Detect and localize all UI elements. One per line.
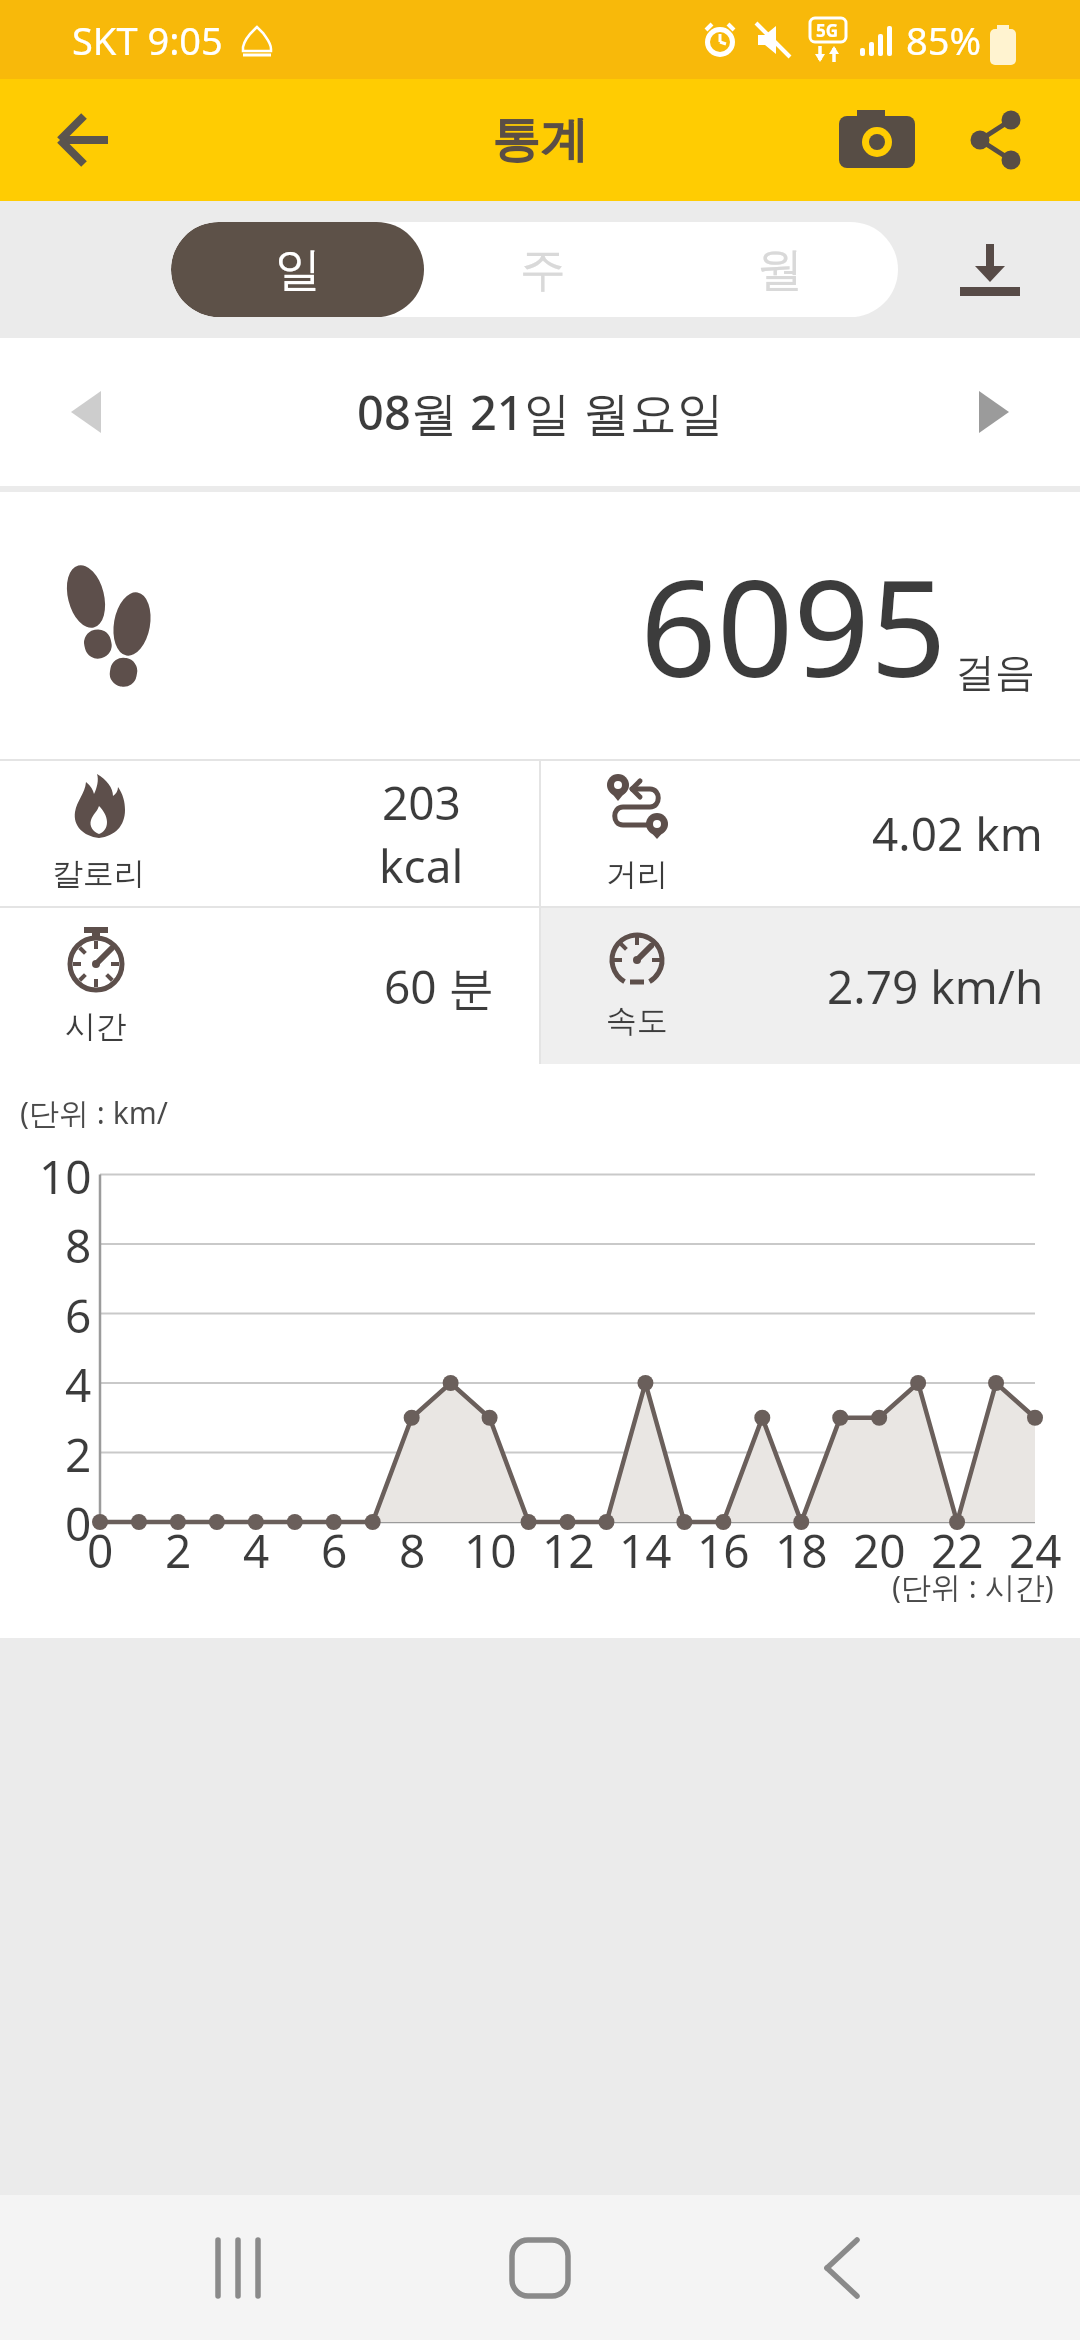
button[interactable]: [50, 376, 122, 448]
staticText: 0: [65, 1492, 92, 1555]
staticText: 속도: [606, 1001, 668, 1040]
staticText: 22: [931, 1519, 984, 1582]
staticText: 18: [775, 1519, 828, 1582]
staticText: 4.02 km: [872, 802, 1043, 865]
staticText: 2.79 km/h: [827, 955, 1044, 1018]
button[interactable]: 일: [171, 222, 424, 317]
staticText: 주: [520, 241, 566, 299]
button[interactable]: 월: [661, 222, 898, 317]
staticText: 203: [382, 771, 461, 834]
staticText: 16: [697, 1519, 750, 1582]
staticText: 6: [321, 1519, 348, 1582]
staticText: 4: [243, 1519, 270, 1582]
button[interactable]: [183, 2213, 293, 2323]
staticText: 걸음: [955, 647, 1035, 697]
staticText: 4: [65, 1353, 92, 1416]
button[interactable]: [958, 376, 1030, 448]
button[interactable]: 거리: [541, 761, 1080, 906]
staticText: 85%: [906, 14, 982, 66]
staticText: 6095: [640, 534, 947, 717]
button[interactable]: [837, 100, 917, 180]
staticText: 24: [1009, 1519, 1062, 1582]
staticText: 칼로리: [52, 854, 145, 893]
staticText: (단위 : 시간): [892, 1566, 1054, 1607]
staticText: 10: [464, 1519, 517, 1582]
staticText: 20: [853, 1519, 906, 1582]
staticText: 14: [619, 1519, 672, 1582]
staticText: 10: [39, 1145, 92, 1208]
staticText: kcal: [379, 834, 464, 897]
staticText: 거리: [606, 855, 668, 894]
button[interactable]: 칼로리: [0, 761, 539, 906]
staticText: 일: [275, 241, 321, 299]
staticText: 2: [65, 1423, 92, 1486]
button[interactable]: 시간: [0, 908, 539, 1064]
button[interactable]: 주: [424, 222, 661, 317]
staticText: 월: [757, 241, 803, 299]
button[interactable]: [36, 92, 132, 188]
staticText: 시간: [65, 1007, 127, 1046]
button[interactable]: [485, 2213, 595, 2323]
staticText: 60 분: [384, 955, 495, 1018]
staticText: 08월 21일 월요일: [357, 380, 724, 444]
staticText: (단위 : km/: [20, 1092, 168, 1133]
staticText: 통계: [492, 110, 588, 170]
staticText: 6: [65, 1284, 92, 1347]
button[interactable]: [962, 105, 1032, 175]
staticText: SKT 9:05: [72, 14, 223, 66]
staticText: 2: [165, 1519, 192, 1582]
staticText: 0: [87, 1519, 114, 1582]
button[interactable]: [945, 225, 1035, 315]
button[interactable]: [787, 2213, 897, 2323]
staticText: 8: [399, 1519, 426, 1582]
staticText: 12: [542, 1519, 595, 1582]
button[interactable]: 속도: [541, 908, 1080, 1064]
staticText: 5G: [816, 19, 839, 42]
staticText: 8: [65, 1214, 92, 1277]
